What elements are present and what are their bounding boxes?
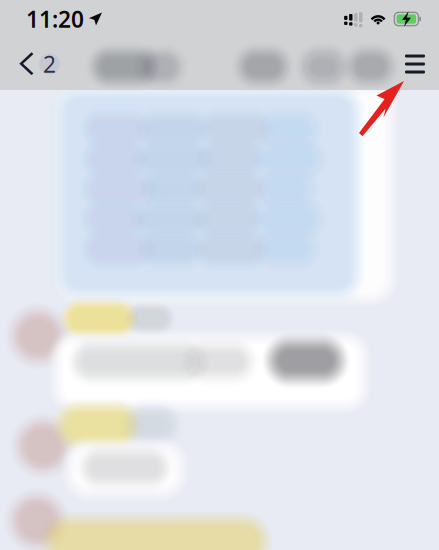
button[interactable]: Back [0, 37, 70, 90]
staticText: 11:20 [26, 4, 84, 34]
staticText: 2 [43, 49, 56, 79]
staticText: jingyan.baidu.com [276, 39, 415, 60]
staticText: Baidu 经验 [272, 0, 415, 37]
button[interactable]: Menu [391, 38, 439, 90]
